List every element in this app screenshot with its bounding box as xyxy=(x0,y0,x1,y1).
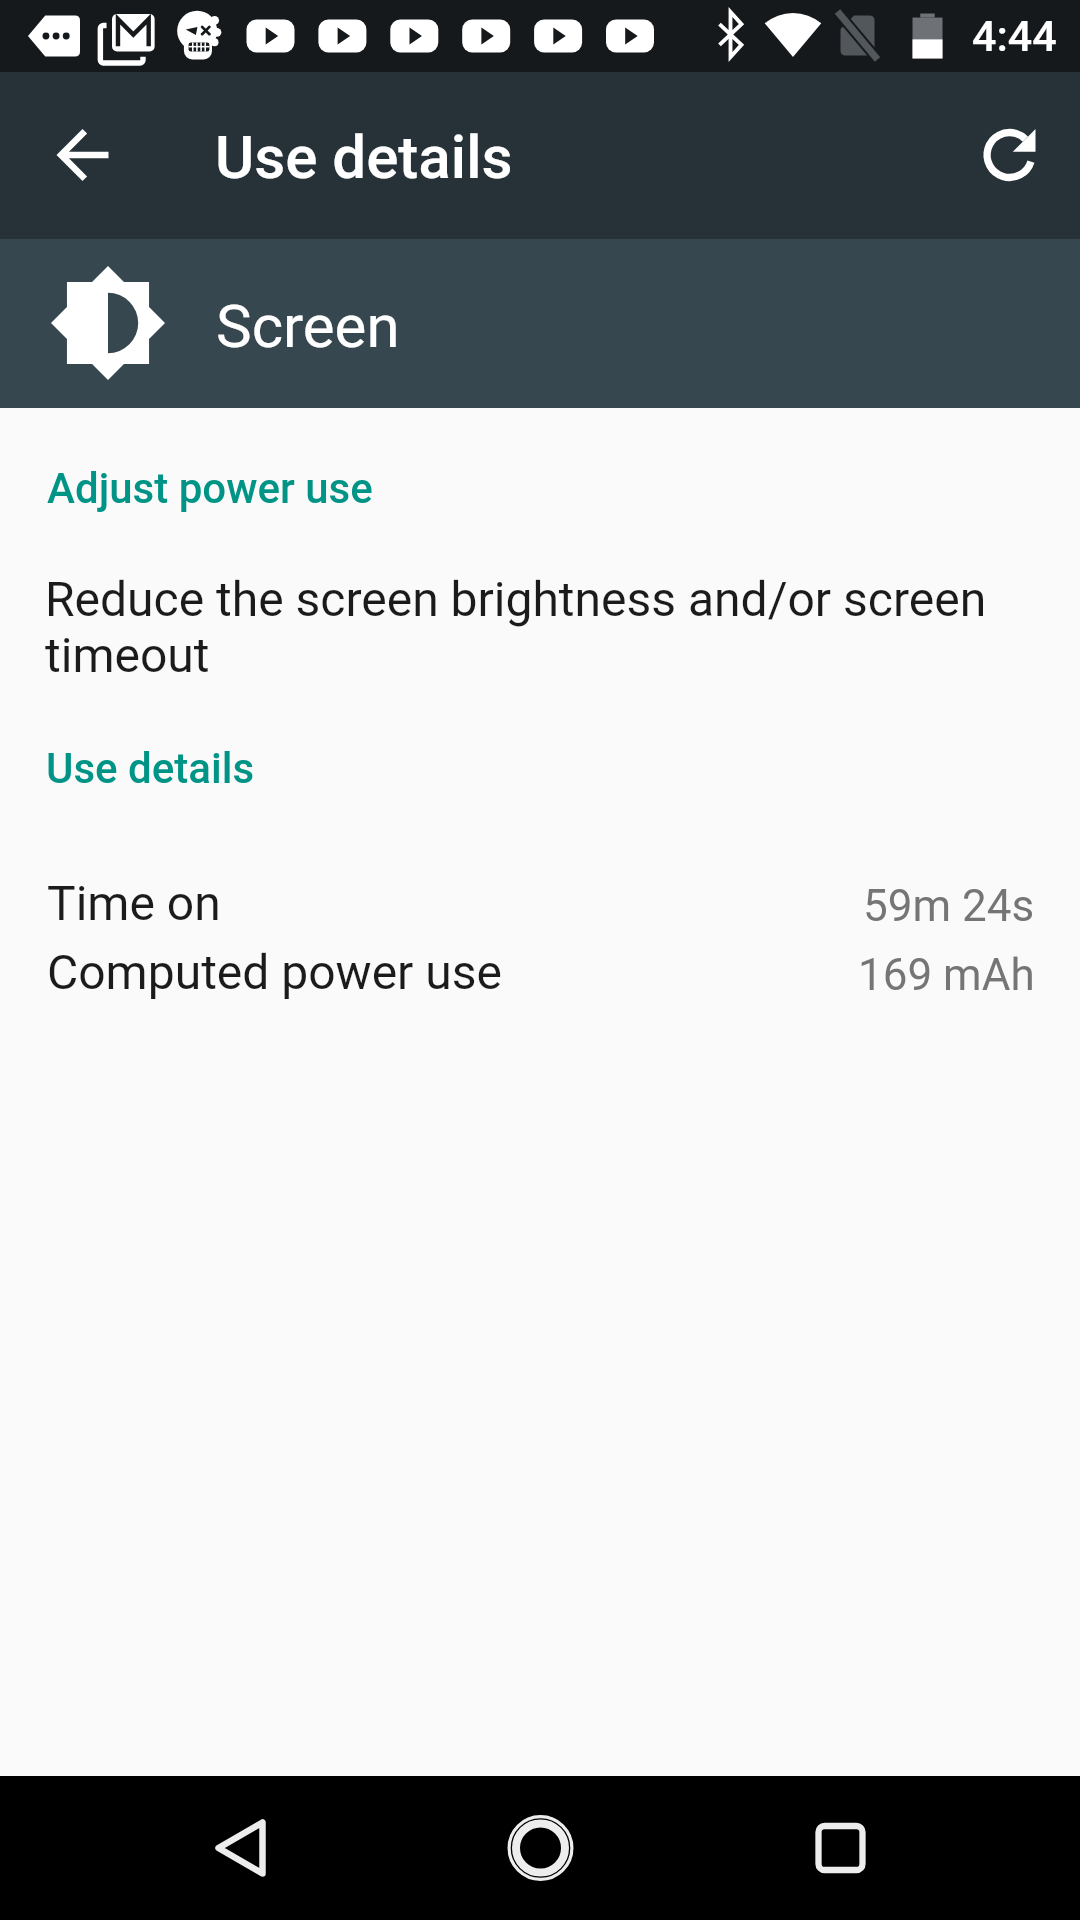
button[interactable]: Navigate up xyxy=(34,107,131,204)
staticText: Adjust power use xyxy=(47,464,373,513)
staticText: Use details xyxy=(46,744,255,793)
button[interactable] xyxy=(0,239,1080,408)
button[interactable]: Home xyxy=(460,1776,620,1920)
staticText: Time on xyxy=(47,875,221,931)
staticText: Computed power use xyxy=(47,944,502,1000)
staticText: Reduce the screen brightness and/or scre… xyxy=(45,571,1035,684)
staticText: 4:44 xyxy=(972,11,1057,61)
button[interactable]: Recent apps xyxy=(760,1776,920,1920)
staticText: 59m 24s xyxy=(863,880,1035,932)
button[interactable]: Computed power use xyxy=(0,937,1080,1006)
button[interactable]: Back xyxy=(160,1776,320,1920)
staticText: 169 mAh xyxy=(858,949,1035,1001)
staticText: Use details xyxy=(215,122,513,192)
staticText: Screen xyxy=(216,291,400,361)
button[interactable]: Time on xyxy=(0,868,1080,937)
button[interactable]: Refresh xyxy=(960,107,1057,204)
